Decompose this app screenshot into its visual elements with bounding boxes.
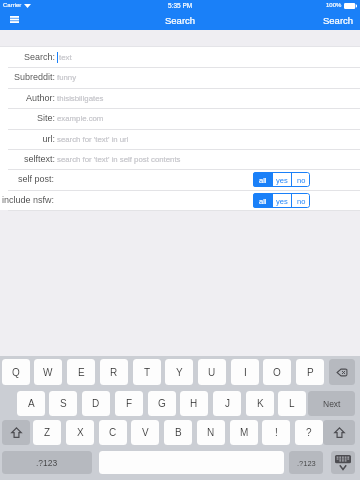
staticText: E: [78, 367, 85, 378]
button[interactable]: F: [115, 391, 143, 416]
staticText: ?: [306, 427, 312, 438]
button[interactable]: ?: [295, 420, 323, 445]
button[interactable]: K: [246, 391, 274, 416]
button[interactable]: N: [197, 420, 225, 445]
staticText: K: [257, 398, 264, 409]
button[interactable]: yes: [273, 172, 291, 187]
staticText: F: [126, 398, 133, 409]
staticText: Search:: [23, 52, 55, 62]
staticText: search for 'text' in self post contents: [57, 155, 181, 164]
button[interactable]: !: [262, 420, 290, 445]
staticText: A: [28, 398, 35, 409]
button[interactable]: no: [292, 172, 310, 187]
staticText: Next: [323, 399, 341, 408]
button[interactable]: .?123: [2, 451, 92, 474]
staticText: S: [60, 398, 67, 409]
button[interactable]: W: [34, 359, 62, 385]
staticText: 100%: [326, 2, 342, 9]
button[interactable]: Q: [2, 359, 30, 385]
staticText: Q: [12, 367, 20, 378]
button[interactable]: Z: [33, 420, 61, 445]
button[interactable]: Shift: [323, 420, 355, 445]
staticText: V: [142, 427, 149, 438]
button[interactable]: S: [49, 391, 77, 416]
staticText: J: [225, 398, 230, 409]
staticText: R: [110, 367, 118, 378]
button[interactable]: all: [253, 193, 272, 208]
button[interactable]: M: [230, 420, 258, 445]
staticText: no: [297, 176, 306, 184]
staticText: 5:35 PM: [168, 2, 193, 9]
staticText: W: [43, 367, 53, 378]
staticText: H: [190, 398, 198, 409]
button[interactable]: A: [17, 391, 45, 416]
button[interactable]: selftext:: [0, 149, 360, 169]
button[interactable]: yes: [273, 193, 291, 208]
staticText: B: [175, 427, 182, 438]
staticText: X: [77, 427, 84, 438]
staticText: example.com: [57, 114, 104, 123]
staticText: P: [307, 367, 314, 378]
button[interactable]: Shift: [2, 420, 30, 445]
staticText: yes: [276, 176, 288, 184]
staticText: G: [158, 398, 166, 409]
button[interactable]: J: [213, 391, 241, 416]
button[interactable]: H: [180, 391, 208, 416]
staticText: Z: [44, 427, 51, 438]
staticText: U: [208, 367, 216, 378]
button[interactable]: D: [82, 391, 110, 416]
staticText: funny: [57, 73, 77, 82]
button[interactable]: .?123: [289, 451, 323, 474]
button[interactable]: Y: [165, 359, 193, 385]
button[interactable]: Subreddit:: [0, 67, 360, 87]
button[interactable]: Hide keyboard: [331, 451, 355, 474]
button[interactable]: Next: [308, 391, 355, 416]
staticText: Carrier: [3, 2, 22, 9]
staticText: Y: [176, 367, 183, 378]
staticText: self post:: [18, 174, 55, 184]
staticText: text: [59, 53, 72, 62]
button[interactable]: no: [292, 193, 310, 208]
staticText: Subreddit:: [13, 72, 55, 82]
button[interactable]: all: [253, 172, 272, 187]
staticText: C: [109, 427, 117, 438]
staticText: .?123: [36, 458, 58, 467]
staticText: Author:: [25, 93, 55, 103]
staticText: N: [207, 427, 215, 438]
button[interactable]: Site:: [0, 108, 360, 128]
button[interactable]: C: [99, 420, 127, 445]
staticText: Search: [165, 15, 196, 26]
button[interactable]: Search: [317, 11, 360, 30]
staticText: Site:: [36, 113, 55, 123]
staticText: O: [273, 367, 281, 378]
button[interactable]: L: [278, 391, 306, 416]
button[interactable]: R: [100, 359, 128, 385]
staticText: .?123: [297, 459, 316, 467]
staticText: search for 'text' in url: [57, 135, 129, 144]
button[interactable]: E: [67, 359, 95, 385]
staticText: yes: [276, 197, 288, 205]
button[interactable]: url:: [0, 129, 360, 149]
button[interactable]: V: [131, 420, 159, 445]
button[interactable]: P: [296, 359, 324, 385]
staticText: L: [289, 398, 295, 409]
button[interactable]: Author:: [0, 88, 360, 108]
staticText: url:: [42, 134, 55, 144]
button[interactable]: O: [263, 359, 291, 385]
staticText: include nsfw:: [2, 195, 55, 205]
staticText: !: [275, 427, 278, 438]
button[interactable]: Menu: [0, 11, 28, 30]
button[interactable]: I: [231, 359, 259, 385]
staticText: selftext:: [23, 154, 55, 164]
staticText: M: [240, 427, 249, 438]
button[interactable]: X: [66, 420, 94, 445]
button[interactable]: U: [198, 359, 226, 385]
button[interactable]: G: [148, 391, 176, 416]
staticText: I: [244, 367, 247, 378]
staticText: all: [259, 197, 267, 205]
button[interactable]: Search:: [0, 47, 360, 67]
button[interactable]: T: [133, 359, 161, 385]
button[interactable]: B: [164, 420, 192, 445]
button[interactable]: Backspace: [329, 359, 355, 385]
